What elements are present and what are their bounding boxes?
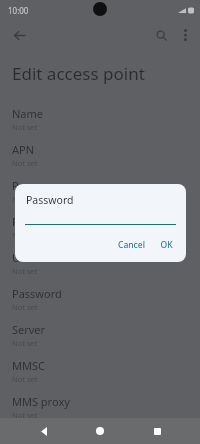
button[interactable]: Search [150, 24, 172, 46]
staticText: Not set [12, 122, 38, 132]
button[interactable]: MMSC [0, 353, 200, 389]
staticText: OK [160, 239, 173, 251]
staticText: Not set [12, 266, 38, 276]
staticText: Cancel [118, 239, 145, 251]
staticText: Password [12, 286, 62, 301]
button[interactable]: Recent apps [144, 418, 170, 444]
staticText: 10:00 [8, 5, 29, 16]
staticText: Proxy [12, 178, 41, 193]
button[interactable]: Server [0, 317, 200, 353]
staticText: Port [12, 214, 34, 229]
button[interactable]: Cancel [115, 237, 148, 253]
staticText: Not set [12, 338, 38, 348]
button[interactable]: Back [8, 24, 30, 46]
staticText: MMSC [12, 358, 45, 373]
button[interactable]: Port [0, 209, 200, 245]
button[interactable]: MMS proxy [0, 389, 200, 425]
button[interactable]: Password [0, 281, 200, 317]
staticText: Not set [12, 374, 38, 384]
button[interactable]: Proxy [0, 173, 200, 209]
button[interactable]: More options [174, 24, 196, 46]
staticText: Password [26, 193, 74, 207]
button[interactable]: Home [87, 418, 113, 444]
button[interactable]: OK [157, 237, 176, 253]
staticText: Edit access point [12, 62, 145, 85]
staticText: Not set [12, 158, 38, 168]
staticText: Server [12, 322, 46, 337]
staticText: MMS proxy [12, 394, 70, 409]
staticText: Username [12, 250, 66, 265]
staticText: Name [12, 106, 44, 121]
button[interactable]: Name [0, 101, 200, 137]
staticText: Not set [12, 194, 38, 204]
button[interactable]: Back [31, 418, 57, 444]
button[interactable]: APN [0, 137, 200, 173]
staticText: Not set [12, 410, 38, 420]
button[interactable]: Username [0, 245, 200, 281]
staticText: APN [12, 142, 35, 157]
staticText: Not set [12, 302, 38, 312]
staticText: Not set [12, 230, 38, 240]
